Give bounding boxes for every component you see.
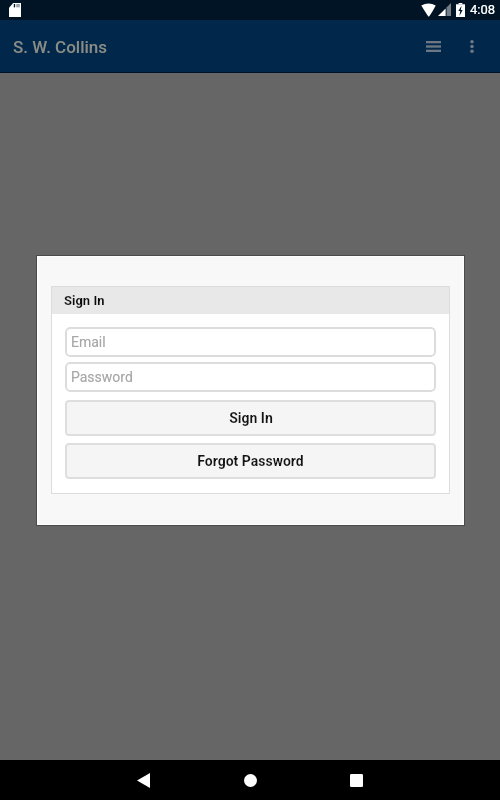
button[interactable]: Forgot Password [65, 443, 436, 479]
button[interactable]: Email [65, 327, 436, 357]
staticText: Forgot Password [197, 453, 304, 469]
staticText: S. W. Collins [13, 37, 108, 57]
button[interactable]: Sign In [65, 400, 436, 436]
staticText: Password [71, 369, 133, 385]
button[interactable]: Home [220, 760, 280, 800]
staticText: Sign In [64, 293, 105, 308]
staticText: 4:08 [470, 2, 496, 17]
staticText: Sign In [229, 410, 273, 426]
button[interactable]: More options [450, 24, 494, 68]
button[interactable]: Recents [326, 760, 386, 800]
button[interactable]: Password [65, 362, 436, 392]
button[interactable]: Back [113, 760, 173, 800]
staticText: Email [71, 334, 106, 350]
button[interactable]: Menu [411, 24, 455, 68]
